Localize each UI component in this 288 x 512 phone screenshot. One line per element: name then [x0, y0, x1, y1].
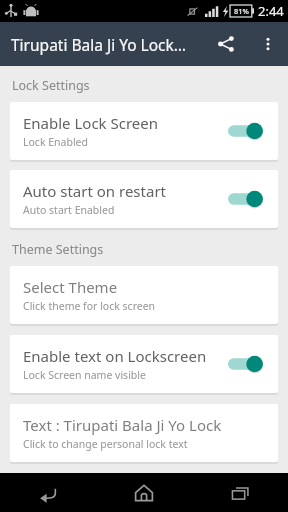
button[interactable]: Back	[0, 473, 96, 512]
staticText: Enable text on Lockscreen	[23, 346, 207, 366]
staticText: Auto start Enabled	[23, 203, 115, 217]
staticText: Select Theme	[23, 277, 118, 297]
button[interactable]: Toggle	[228, 352, 268, 376]
staticText: Auto start on restart	[23, 181, 166, 201]
staticText: 81%	[234, 6, 249, 16]
staticText: Lock Screen name visible	[23, 368, 146, 382]
staticText: Tirupati Bala Ji Yo Lock…	[11, 34, 207, 55]
staticText: Theme Settings	[12, 241, 104, 258]
button[interactable]: Auto start on restart	[10, 170, 278, 228]
staticText: Lock Settings	[12, 77, 90, 94]
staticText: Lock Enabled	[23, 135, 88, 149]
button[interactable]: Home	[96, 473, 192, 512]
button[interactable]: Select Theme	[10, 266, 278, 324]
staticText: Text : Tirupati Bala Ji Yo Lock Screen	[23, 415, 268, 435]
button[interactable]: Enable text on Lockscreen	[10, 335, 278, 393]
button[interactable]: Share	[206, 24, 246, 64]
button[interactable]: Text : Tirupati Bala Ji Yo Lock Screen	[10, 404, 278, 462]
staticText: Click to change personal lock text	[23, 437, 188, 451]
staticText: 2:44	[258, 2, 284, 20]
button[interactable]: More options	[248, 24, 288, 64]
staticText: Enable Lock Screen	[23, 113, 159, 133]
button[interactable]: Enable Lock Screen	[10, 102, 278, 160]
button[interactable]: Recent apps	[192, 473, 288, 512]
staticText: Click theme for lock screen	[23, 299, 156, 313]
button[interactable]: Toggle	[228, 187, 268, 211]
button[interactable]: Toggle	[228, 119, 268, 143]
